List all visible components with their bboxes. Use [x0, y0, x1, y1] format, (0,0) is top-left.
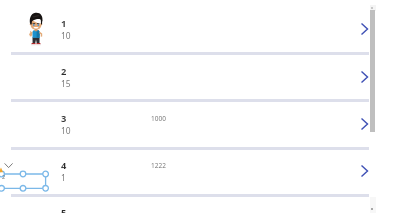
staticText: 4	[61, 159, 67, 172]
button[interactable]: 2	[0, 55, 399, 100]
other: Open	[361, 165, 368, 177]
other: Open	[361, 23, 368, 35]
other: Open	[361, 118, 368, 130]
staticText: 10	[61, 30, 71, 41]
button[interactable]: 1	[0, 7, 399, 52]
staticText: 5	[61, 206, 67, 213]
staticText: 2	[61, 65, 67, 78]
staticText: 1	[61, 172, 66, 183]
button[interactable]: 2	[0, 149, 399, 194]
other: Open	[361, 71, 368, 83]
button[interactable]: 5	[0, 196, 399, 213]
staticText: 1000	[151, 114, 166, 123]
staticText: 3	[61, 112, 67, 125]
staticText: 15	[61, 78, 71, 89]
staticText: 1222	[151, 161, 166, 170]
staticText: 1	[61, 17, 67, 30]
staticText: 2	[2, 173, 6, 180]
staticText: 10	[61, 125, 71, 136]
button[interactable]: 3	[0, 102, 399, 147]
